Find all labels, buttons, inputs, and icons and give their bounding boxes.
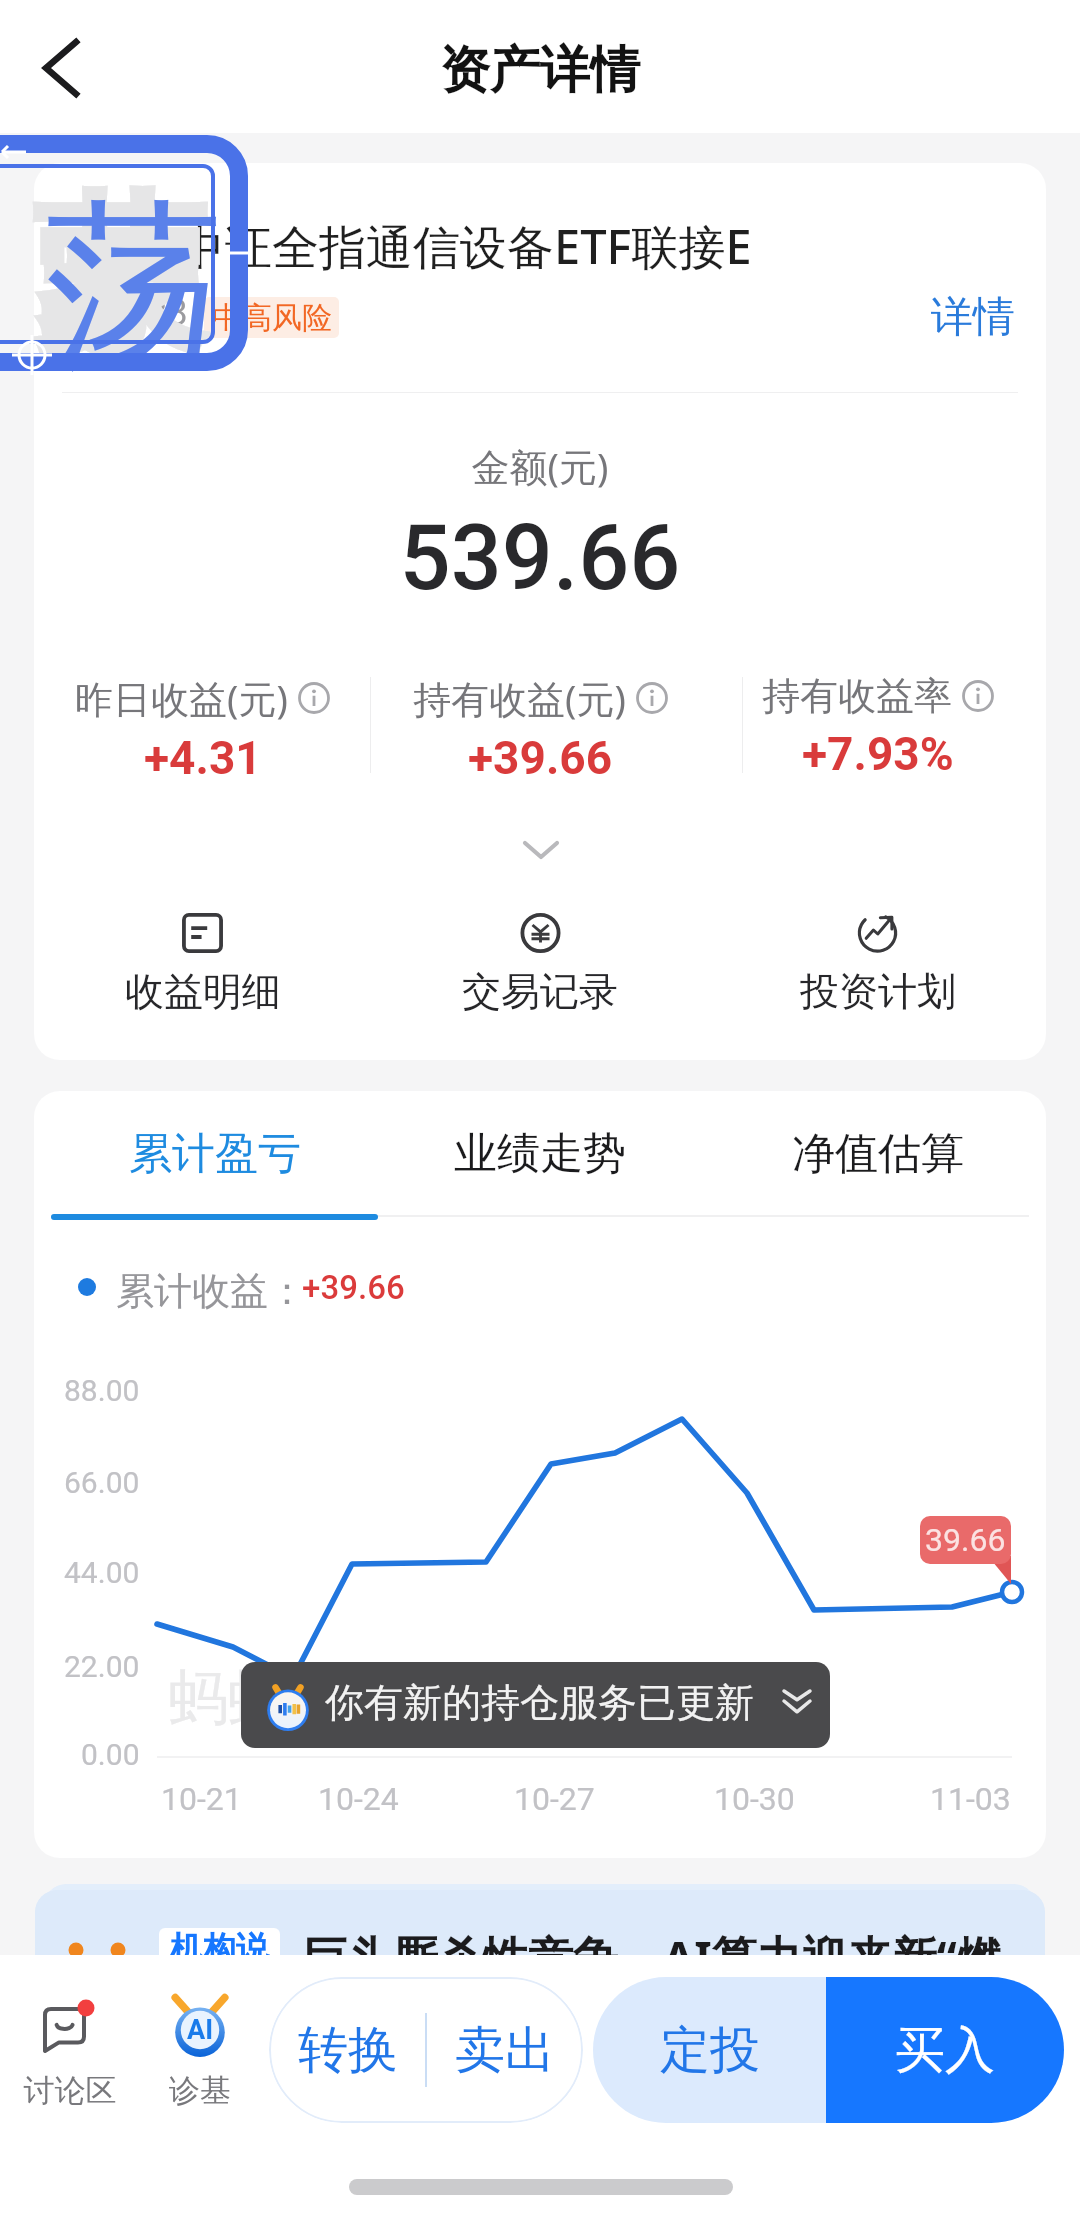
staticText: 022588: [66, 292, 188, 334]
button[interactable]: 买入: [826, 1977, 1064, 2123]
button[interactable]: 累计盈亏: [46, 1091, 383, 1217]
staticText: 定投: [660, 2019, 760, 2082]
staticText: 机构说: [170, 1928, 269, 1970]
staticText: 巨头厮杀性竞争，AI算力迎来新“燃: [303, 1926, 1002, 1987]
staticText: 资产详情: [440, 39, 640, 102]
button[interactable]: 投资计划: [709, 913, 1046, 1016]
staticText: 转换: [298, 2019, 398, 2082]
staticText: 蚂蚁: [168, 1660, 288, 1736]
button[interactable]: 机构说: [35, 1890, 1045, 2000]
staticText: 10-30: [714, 1780, 795, 1818]
button[interactable]: 业绩走势: [371, 1091, 709, 1217]
staticText: 诊基: [142, 2071, 258, 2110]
staticText: 业绩走势: [454, 1127, 626, 1181]
staticText: 10-21: [161, 1780, 242, 1818]
staticText: 0.00: [81, 1737, 140, 1772]
staticText: 持有收益(元): [413, 672, 626, 724]
staticText: 88.00: [64, 1373, 140, 1408]
staticText: 10-27: [514, 1780, 595, 1818]
button[interactable]: 转换: [269, 1977, 426, 2123]
staticText: 蒙: [33, 172, 205, 389]
button[interactable]: 净值估算: [709, 1091, 1046, 1217]
staticText: +4.31: [144, 731, 262, 785]
button[interactable]: 卖出: [426, 1977, 583, 2123]
staticText: 投资计划: [800, 967, 956, 1016]
staticText: 收益明细: [125, 967, 281, 1016]
staticText: AI: [187, 2014, 214, 2046]
staticText: 净值估算: [792, 1127, 964, 1181]
staticText: 539.66: [34, 506, 1046, 611]
staticText: 买入: [895, 2019, 995, 2082]
staticText: 11-03: [930, 1780, 1011, 1818]
staticText: 44.00: [64, 1555, 140, 1590]
staticText: 累计盈亏: [129, 1127, 301, 1181]
button[interactable]: 交易记录: [371, 913, 709, 1016]
staticText: 持有收益率: [762, 672, 952, 720]
staticText: 昨日收益(元): [75, 672, 288, 724]
staticText: 22.00: [64, 1649, 140, 1684]
button[interactable]: AI: [142, 1991, 258, 2125]
button[interactable]: 你有新的持仓服务已更新: [241, 1662, 830, 1748]
staticText: 39.66: [925, 1521, 1006, 1559]
button[interactable]: 定投: [593, 1977, 826, 2123]
button[interactable]: Back: [18, 24, 104, 110]
staticText: 详情: [931, 291, 1015, 344]
staticText: +39.66: [302, 1268, 405, 1307]
staticText: +39.66: [468, 731, 613, 785]
button[interactable]: 收益明细: [34, 913, 371, 1016]
staticText: 金额(元): [34, 440, 1046, 492]
staticText: 10-24: [318, 1780, 399, 1818]
staticText: 中高风险: [212, 299, 332, 337]
staticText: 你有新的持仓服务已更新: [325, 1678, 754, 1727]
button[interactable]: 详情: [906, 273, 1040, 361]
staticText: 讨论区: [12, 2071, 128, 2110]
staticText: 中证全指通信设备ETF联接E: [178, 214, 752, 278]
staticText: 荡: [45, 176, 223, 400]
staticText: 66.00: [64, 1465, 140, 1500]
staticText: 累计收益：: [116, 1267, 306, 1315]
staticText: +7.93%: [802, 727, 954, 781]
staticText: 交易记录: [462, 967, 618, 1016]
button[interactable]: 讨论区: [12, 1991, 128, 2125]
staticText: 卖出: [455, 2019, 555, 2082]
